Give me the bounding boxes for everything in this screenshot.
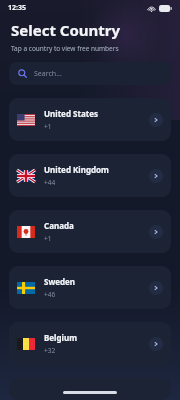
staticText: Belgium (44, 332, 77, 343)
button[interactable]: Belgium (9, 322, 171, 365)
staticText: +1 (44, 122, 52, 131)
staticText: Canada (44, 220, 74, 231)
button[interactable]: United States (9, 98, 171, 141)
staticText: +46 (44, 290, 56, 299)
button[interactable]: View Sweden numbers (149, 281, 163, 295)
staticText: +44 (44, 178, 56, 187)
button[interactable]: United Kingdom (9, 154, 171, 197)
button[interactable]: View United States numbers (149, 113, 163, 127)
staticText: Select Country (11, 20, 121, 40)
staticText: Tap a country to view free numbers (11, 44, 119, 53)
button[interactable]: Sweden (9, 266, 171, 309)
staticText: Sweden (44, 276, 76, 287)
staticText: United Kingdom (44, 164, 109, 175)
other: Wi-Fi (147, 5, 156, 12)
staticText: +1 (44, 234, 52, 243)
button[interactable]: View Belgium numbers (149, 337, 163, 351)
staticText: United States (44, 108, 98, 119)
staticText: 12:35 (8, 3, 26, 13)
staticText: Search... (34, 69, 62, 79)
button[interactable]: View Canada numbers (149, 225, 163, 239)
button[interactable] (9, 378, 171, 400)
staticText: +32 (44, 346, 56, 355)
button[interactable]: View United Kingdom numbers (149, 169, 163, 183)
button[interactable]: Canada (9, 210, 171, 253)
button[interactable]: Search... (9, 62, 171, 85)
other: Battery (159, 5, 172, 12)
